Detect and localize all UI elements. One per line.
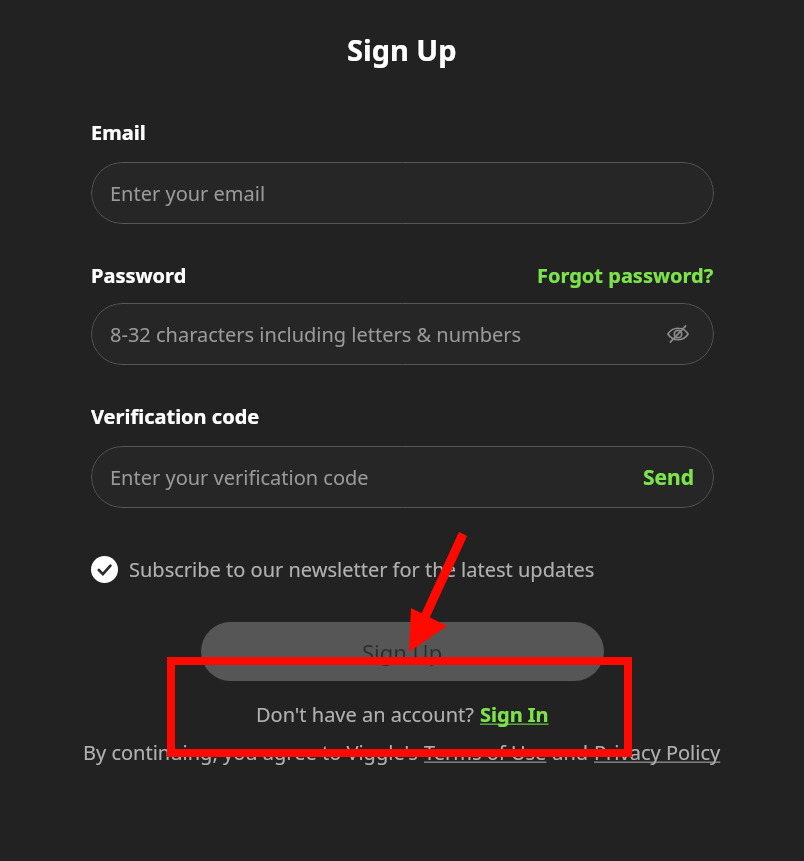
button[interactable]: Enter your verification code	[91, 446, 714, 508]
button[interactable]: Forgot password?	[537, 262, 714, 289]
staticText: Password	[91, 262, 187, 289]
button[interactable]: 8-32 characters including letters & numb…	[91, 303, 714, 365]
staticText: By continuing, you agree to Viggle's	[83, 739, 424, 766]
staticText: and	[547, 739, 594, 766]
staticText: Email	[91, 119, 146, 146]
staticText: Forgot password?	[537, 262, 714, 289]
staticText: Subscribe to our newsletter for the late…	[129, 556, 595, 583]
staticText: Sign Up	[362, 637, 443, 667]
staticText: Verification code	[91, 403, 260, 430]
staticText: Enter your email	[110, 180, 266, 207]
button[interactable]: Subscribe to our newsletter for the late…	[91, 556, 595, 583]
staticText: Terms of Use	[424, 739, 547, 766]
button[interactable]: Privacy Policy	[594, 739, 721, 766]
staticText: Privacy Policy	[594, 739, 721, 766]
button[interactable]: Enter your email	[91, 162, 714, 224]
staticText: Send	[643, 463, 695, 492]
button[interactable]: Sign Up	[201, 622, 604, 681]
button[interactable]: Show password	[661, 317, 695, 351]
staticText: Don't have an account?	[256, 701, 480, 728]
staticText: Enter your verification code	[110, 464, 369, 491]
button[interactable]: Sign In	[480, 701, 549, 728]
button[interactable]: Send	[633, 463, 695, 492]
button[interactable]: Terms of Use	[424, 739, 547, 766]
staticText: Sign Up	[347, 30, 457, 69]
staticText: Sign In	[480, 701, 549, 728]
staticText: 8-32 characters including letters & numb…	[110, 321, 522, 348]
